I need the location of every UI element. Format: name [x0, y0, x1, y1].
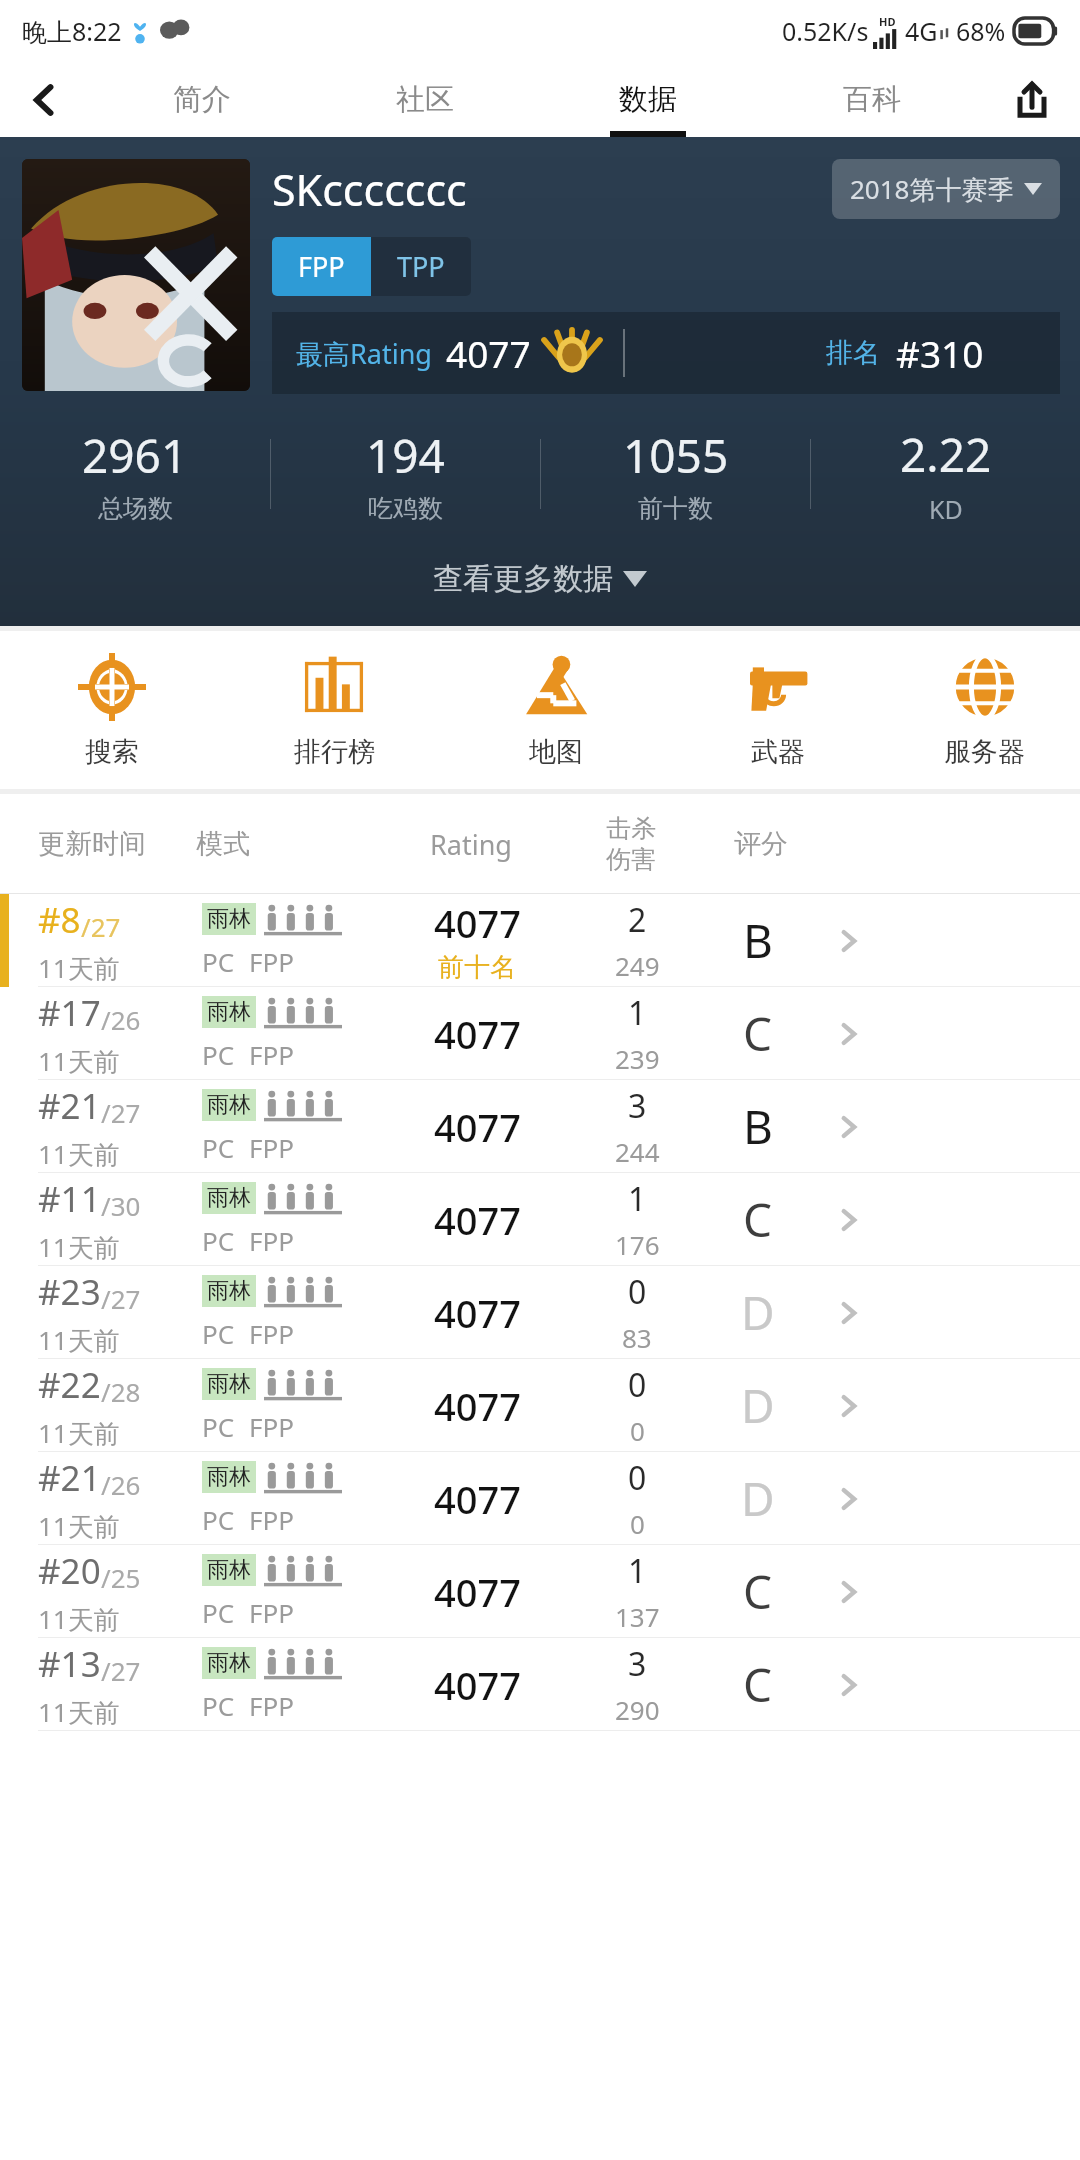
button[interactable]: #11 — [0, 1173, 1080, 1266]
staticText: PC — [202, 1595, 235, 1630]
staticText: KD — [929, 492, 963, 526]
button[interactable]: 1055 — [541, 424, 810, 524]
staticText: FPP — [249, 944, 294, 979]
button[interactable] — [22, 159, 250, 391]
staticText: 11天前 — [38, 1136, 120, 1172]
staticText: 雨林 — [207, 1091, 251, 1119]
staticText: #23 — [38, 1268, 101, 1316]
staticText: #13 — [38, 1640, 101, 1688]
staticText: 11天前 — [38, 1043, 120, 1079]
staticText: 伤害 — [606, 844, 656, 875]
staticText: #20 — [38, 1547, 101, 1595]
staticText: C — [743, 1653, 773, 1716]
button[interactable]: 武器 — [667, 631, 889, 789]
button[interactable]: Share — [984, 62, 1080, 137]
staticText: 0 — [628, 1270, 647, 1314]
staticText: 击杀 — [606, 813, 656, 844]
button[interactable]: 百科 — [760, 62, 984, 137]
staticText: 雨林 — [207, 1556, 251, 1584]
staticText: FPP — [249, 1409, 294, 1444]
staticText: #310 — [896, 328, 984, 378]
staticText: 吃鸡数 — [368, 493, 443, 524]
button[interactable]: 数据 — [536, 62, 760, 137]
staticText: /26 — [101, 1002, 141, 1037]
button[interactable]: 服务器 — [889, 631, 1080, 789]
button[interactable]: 排行榜 — [223, 631, 445, 789]
staticText: 0 — [630, 1506, 645, 1541]
staticText: 11天前 — [38, 1229, 120, 1265]
staticText: 4077 — [446, 328, 531, 378]
button[interactable]: 最高Rating — [272, 312, 1060, 394]
staticText: FPP — [249, 1595, 294, 1630]
button[interactable]: 194 — [271, 424, 540, 524]
button[interactable]: TPP — [371, 237, 471, 296]
button[interactable]: 社区 — [313, 62, 536, 137]
staticText: C — [743, 1188, 773, 1251]
staticText: 11天前 — [38, 1322, 120, 1358]
staticText: 3 — [628, 1642, 647, 1686]
staticText: 249 — [615, 948, 660, 983]
staticText: FPP — [249, 1502, 294, 1537]
button[interactable]: 2.22 — [811, 423, 1080, 526]
staticText: 2018第十赛季 — [850, 171, 1014, 207]
button[interactable]: #21 — [0, 1080, 1080, 1173]
button[interactable]: #13 — [0, 1638, 1080, 1731]
button[interactable]: Back — [0, 62, 90, 137]
staticText: PC — [202, 1502, 235, 1537]
staticText: 11天前 — [38, 1508, 120, 1544]
staticText: HD — [879, 14, 896, 29]
staticText: #8 — [38, 896, 81, 944]
staticText: 前十数 — [638, 493, 713, 524]
staticText: 4077 — [434, 1287, 521, 1339]
button[interactable]: 查看更多数据 — [0, 532, 1080, 626]
staticText: 模式 — [196, 827, 376, 861]
button[interactable]: 2961 — [0, 424, 270, 524]
staticText: 搜索 — [85, 735, 139, 769]
staticText: 0 — [628, 1363, 647, 1407]
button[interactable]: 地图 — [445, 631, 667, 789]
button[interactable]: #20 — [0, 1545, 1080, 1638]
staticText: PC — [202, 1130, 235, 1165]
button[interactable]: 简介 — [90, 62, 313, 137]
staticText: FPP — [298, 248, 345, 285]
staticText: PC — [202, 1688, 235, 1723]
staticText: 雨林 — [207, 1463, 251, 1491]
staticText: SKccccccc — [272, 160, 467, 219]
staticText: /27 — [101, 1095, 141, 1130]
staticText: 244 — [615, 1134, 660, 1169]
staticText: FPP — [249, 1037, 294, 1072]
staticText: #17 — [38, 989, 101, 1037]
staticText: 评分 — [696, 827, 826, 861]
staticText: D — [741, 1281, 775, 1344]
button[interactable]: #8 — [0, 894, 1080, 987]
staticText: 176 — [615, 1227, 660, 1262]
button[interactable]: 搜索 — [0, 631, 223, 789]
staticText: 雨林 — [207, 1649, 251, 1677]
staticText: 4077 — [434, 1659, 521, 1711]
staticText: C — [743, 1560, 773, 1623]
button[interactable]: #23 — [0, 1266, 1080, 1359]
button[interactable]: #17 — [0, 987, 1080, 1080]
staticText: 百科 — [843, 81, 901, 118]
staticText: 11天前 — [38, 1415, 120, 1451]
staticText: #22 — [38, 1361, 101, 1409]
staticText: 4077 — [434, 1380, 521, 1432]
button[interactable]: #22 — [0, 1359, 1080, 1452]
staticText: 总场数 — [98, 493, 173, 524]
staticText: 武器 — [751, 735, 805, 769]
staticText: /27 — [81, 909, 121, 944]
button[interactable]: #21 — [0, 1452, 1080, 1545]
staticText: 2.22 — [900, 423, 992, 486]
staticText: FPP — [249, 1688, 294, 1723]
staticText: /27 — [101, 1653, 141, 1688]
staticText: 4077 — [434, 897, 521, 949]
staticText: PC — [202, 1409, 235, 1444]
staticText: 晚上8:22 — [22, 14, 122, 48]
staticText: 0 — [630, 1413, 645, 1448]
staticText: 290 — [615, 1692, 660, 1727]
button[interactable]: 2018第十赛季 — [832, 159, 1060, 219]
staticText: 194 — [366, 424, 445, 487]
staticText: /25 — [101, 1560, 141, 1595]
staticText: 1 — [628, 1177, 647, 1221]
button[interactable]: FPP — [272, 237, 371, 296]
